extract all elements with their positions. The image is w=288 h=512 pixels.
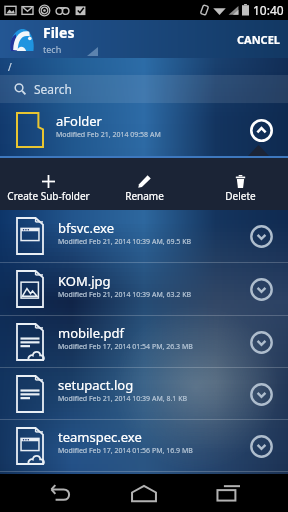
staticText: Modified Feb 21, 2014 10:39 AM, 63.2 KB bbox=[58, 290, 192, 300]
staticText: Modified Feb 21, 2014 09:58 AM bbox=[56, 130, 161, 140]
button[interactable]: Create Sub-folder bbox=[0, 166, 96, 203]
button[interactable]: bfsvc.exe bbox=[0, 210, 288, 262]
button[interactable]: Expand bbox=[244, 272, 278, 306]
staticText: Modified Feb 17, 2014 01:56 PM, 16.9 MB bbox=[58, 446, 193, 456]
button[interactable]: Expand bbox=[244, 325, 278, 359]
button[interactable]: aFolder bbox=[0, 103, 288, 156]
button[interactable]: Home bbox=[120, 474, 168, 512]
staticText: bfsvc.exe bbox=[58, 219, 115, 237]
button[interactable]: Expand bbox=[244, 219, 278, 253]
staticText: KOM.jpg bbox=[58, 272, 111, 290]
staticText: Files bbox=[43, 23, 75, 42]
button[interactable]: CANCEL bbox=[229, 32, 288, 47]
staticText: setupact.log bbox=[58, 376, 134, 394]
staticText: Modified Feb 21, 2014 10:39 AM, 8.1 KB bbox=[58, 394, 188, 404]
button[interactable]: setupact.log bbox=[0, 368, 288, 419]
staticText: CANCEL bbox=[237, 32, 280, 47]
button[interactable]: teamspec.exe bbox=[0, 420, 288, 471]
button[interactable]: Recent apps bbox=[204, 474, 252, 512]
staticText: Modified Feb 17, 2014 01:54 PM, 26.3 MB bbox=[58, 342, 193, 352]
button[interactable]: Expand bbox=[244, 377, 278, 411]
staticText: Search bbox=[34, 81, 72, 97]
staticText: Create Sub-folder bbox=[7, 189, 90, 203]
staticText: teamspec.exe bbox=[58, 428, 142, 446]
button[interactable]: KOM.jpg bbox=[0, 263, 288, 315]
staticText: tech bbox=[43, 43, 62, 55]
button[interactable]: Rename bbox=[96, 166, 192, 203]
staticText: Rename bbox=[125, 189, 164, 203]
staticText: Delete bbox=[225, 189, 256, 203]
staticText: Modified Feb 21, 2014 10:39 AM, 69.5 KB bbox=[58, 237, 192, 247]
button[interactable]: Search bbox=[0, 75, 288, 103]
staticText: mobile.pdf bbox=[58, 324, 125, 342]
button[interactable]: Delete bbox=[192, 166, 288, 203]
staticText: / bbox=[8, 60, 12, 74]
button[interactable]: Collapse bbox=[244, 113, 278, 147]
button[interactable]: mobile.pdf bbox=[0, 316, 288, 367]
staticText: 10:40 bbox=[253, 2, 284, 18]
button[interactable]: Back bbox=[36, 474, 84, 512]
staticText: aFolder bbox=[56, 112, 102, 130]
button[interactable]: Expand bbox=[244, 429, 278, 463]
